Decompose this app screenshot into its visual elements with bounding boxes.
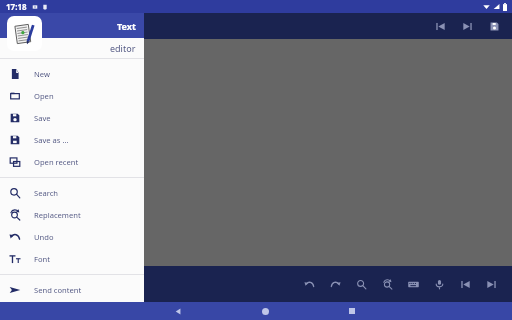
button[interactable]: Search xyxy=(352,275,370,293)
button[interactable]: Open xyxy=(0,85,144,107)
staticText: Save as ... xyxy=(34,135,69,145)
staticText: Replacement xyxy=(34,210,81,220)
button[interactable]: Send content xyxy=(0,279,144,301)
staticText: Open xyxy=(34,91,54,101)
button[interactable]: Open recent xyxy=(0,151,144,173)
button[interactable]: Next xyxy=(482,275,500,293)
button[interactable]: Save xyxy=(485,17,503,35)
button[interactable]: Previous file xyxy=(431,17,449,35)
staticText: editor xyxy=(110,42,136,54)
button[interactable]: Keyboard xyxy=(404,275,422,293)
button[interactable]: Replace xyxy=(378,275,396,293)
button[interactable]: Recents xyxy=(344,303,360,319)
button[interactable]: Previous xyxy=(456,275,474,293)
staticText: Open recent xyxy=(34,157,79,167)
button[interactable]: Back xyxy=(170,303,186,319)
button[interactable]: Font xyxy=(0,248,144,270)
staticText: New xyxy=(34,69,50,79)
button[interactable]: Replacement xyxy=(0,204,144,226)
button[interactable]: New xyxy=(0,63,144,85)
button[interactable]: Undo xyxy=(0,226,144,248)
button[interactable]: Save xyxy=(0,107,144,129)
button[interactable]: Next file xyxy=(458,17,476,35)
staticText: Send content xyxy=(34,285,82,295)
staticText: Search xyxy=(34,188,59,198)
staticText: Text xyxy=(117,20,136,32)
button[interactable]: Home xyxy=(257,303,273,319)
button[interactable]: Text editor app icon xyxy=(7,16,42,51)
button[interactable]: Search xyxy=(0,182,144,204)
staticText: 17:18 xyxy=(6,1,27,12)
staticText: Font xyxy=(34,254,50,264)
staticText: Save xyxy=(34,113,51,123)
button[interactable]: Undo xyxy=(300,275,318,293)
button[interactable]: Save as ... xyxy=(0,129,144,151)
button[interactable]: Redo xyxy=(326,275,344,293)
button[interactable]: Voice input xyxy=(430,275,448,293)
staticText: Undo xyxy=(34,232,54,242)
